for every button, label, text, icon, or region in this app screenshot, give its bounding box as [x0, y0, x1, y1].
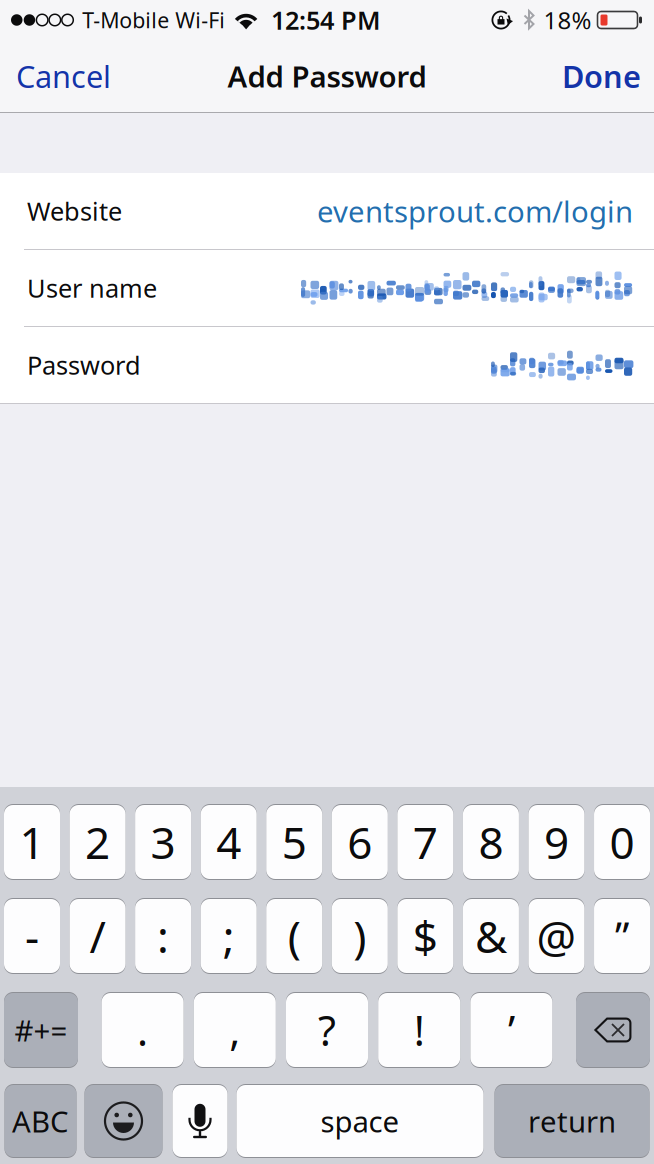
button[interactable]: ,: [194, 992, 276, 1068]
button[interactable]: :: [135, 898, 191, 974]
staticText: ’: [508, 1003, 515, 1057]
staticText: (: [288, 907, 301, 965]
button[interactable]: ”: [594, 898, 650, 974]
button[interactable]: !: [378, 992, 460, 1068]
staticText: 3: [151, 813, 176, 871]
button[interactable]: 6: [332, 804, 388, 880]
staticText: Done: [562, 56, 641, 96]
staticText: Password: [27, 348, 141, 382]
staticText: &: [475, 907, 507, 965]
button[interactable]: 4: [201, 804, 257, 880]
button[interactable]: Emoji: [84, 1084, 162, 1158]
button[interactable]: 9: [528, 804, 584, 880]
button[interactable]: User name: [0, 250, 654, 326]
staticText: 6: [347, 813, 372, 871]
button[interactable]: 0: [594, 804, 650, 880]
staticText: Website: [27, 194, 122, 228]
staticText: space: [320, 1101, 399, 1140]
button[interactable]: Delete: [576, 992, 650, 1068]
staticText: 12:54 PM: [271, 3, 381, 37]
button[interactable]: 8: [463, 804, 519, 880]
staticText: ,: [229, 1003, 240, 1057]
staticText: ?: [318, 1003, 336, 1057]
button[interactable]: @: [528, 898, 584, 974]
button[interactable]: ABC: [4, 1084, 76, 1158]
button[interactable]: return: [494, 1084, 649, 1158]
staticText: ): [353, 907, 366, 965]
button[interactable]: Done: [549, 45, 654, 107]
button[interactable]: 5: [266, 804, 322, 880]
staticText: 8: [478, 813, 503, 871]
staticText: 18%: [543, 4, 591, 36]
button[interactable]: 2: [70, 804, 126, 880]
button[interactable]: Dictate: [172, 1084, 227, 1158]
staticText: return: [528, 1101, 616, 1140]
button[interactable]: ’: [470, 992, 552, 1068]
button[interactable]: (: [266, 898, 322, 974]
button[interactable]: 3: [135, 804, 191, 880]
button[interactable]: 7: [397, 804, 453, 880]
staticText: 7: [413, 813, 438, 871]
staticText: $: [413, 907, 438, 965]
staticText: User name: [27, 271, 157, 305]
staticText: /: [90, 907, 106, 965]
staticText: ABC: [12, 1101, 69, 1140]
staticText: -: [25, 907, 39, 965]
button[interactable]: ): [332, 898, 388, 974]
button[interactable]: ;: [201, 898, 257, 974]
staticText: #+=: [14, 1010, 67, 1049]
button[interactable]: -: [4, 898, 60, 974]
staticText: ”: [615, 909, 629, 962]
button[interactable]: $: [397, 898, 453, 974]
staticText: 5: [282, 813, 307, 871]
staticText: 9: [544, 813, 569, 871]
button[interactable]: #+=: [4, 992, 78, 1068]
staticText: Add Password: [227, 56, 426, 95]
staticText: 1: [19, 813, 44, 871]
staticText: Cancel: [16, 56, 111, 96]
button[interactable]: .: [102, 992, 184, 1068]
button[interactable]: Cancel: [0, 45, 127, 107]
button[interactable]: Website: [0, 173, 654, 249]
button[interactable]: /: [70, 898, 126, 974]
staticText: ;: [223, 907, 235, 965]
button[interactable]: space: [236, 1084, 483, 1158]
staticText: 0: [609, 813, 634, 871]
staticText: 4: [216, 813, 241, 871]
staticText: 2: [85, 813, 110, 871]
button[interactable]: Password: [0, 327, 654, 403]
staticText: T-Mobile Wi-Fi: [82, 6, 225, 34]
staticText: !: [414, 1003, 425, 1057]
button[interactable]: 1: [4, 804, 60, 880]
staticText: .: [137, 1003, 148, 1057]
button[interactable]: &: [463, 898, 519, 974]
button[interactable]: ?: [286, 992, 368, 1068]
staticText: :: [157, 907, 169, 965]
staticText: eventsprout.com/login: [317, 191, 633, 230]
staticText: @: [536, 907, 576, 965]
